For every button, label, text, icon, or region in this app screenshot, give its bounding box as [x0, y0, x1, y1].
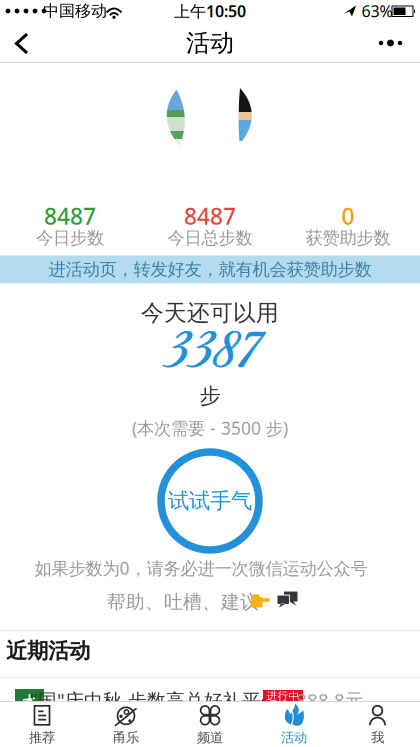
button[interactable]: 我: [337, 702, 417, 747]
staticText: 888.8元: [296, 688, 364, 712]
staticText: 进行中: [266, 689, 299, 702]
staticText: 上午10:50: [174, 0, 246, 22]
staticText: 我: [371, 729, 384, 746]
staticText: 步: [199, 383, 220, 409]
staticText: 试试手气: [168, 488, 252, 514]
staticText: 63%: [361, 0, 392, 22]
staticText: 3387: [166, 315, 259, 392]
staticText: 甬乐: [113, 729, 139, 746]
button[interactable]: 甬乐: [86, 702, 166, 747]
staticText: 0: [341, 201, 354, 231]
staticText: 今日总步数: [167, 227, 252, 249]
staticText: 获赞助步数: [305, 227, 390, 249]
button[interactable]: "国"庆中秋 步数高兑好礼平分: [0, 678, 420, 722]
button[interactable]: 活动: [254, 702, 334, 747]
button[interactable]: [0, 22, 44, 65]
staticText: 活动: [186, 28, 234, 58]
staticText: 进活动页，转发好友，就有机会获赞助步数: [48, 259, 371, 280]
button[interactable]: 试试手气: [157, 448, 263, 554]
staticText: 帮助、吐槽、建议: [107, 590, 259, 613]
staticText: 频道: [197, 729, 223, 746]
staticText: 如果步数为0，请务必进一次微信运动公众号: [34, 556, 367, 579]
button[interactable]: 频道: [170, 702, 250, 747]
staticText: 3387: [165, 315, 258, 391]
button[interactable]: 进活动页，转发好友，就有机会获赞助步数: [0, 255, 420, 283]
staticText: 8487: [184, 201, 236, 231]
staticText: 8487: [44, 201, 96, 231]
staticText: 今天还可以用: [141, 299, 279, 327]
staticText: 中国移动: [43, 1, 107, 21]
staticText: 推荐: [29, 729, 55, 746]
button[interactable]: [369, 22, 412, 64]
staticText: (本次需要 - 3500 步): [132, 416, 288, 439]
staticText: 今日步数: [36, 227, 104, 249]
button[interactable]: 推荐: [2, 702, 82, 747]
staticText: 活动: [281, 729, 307, 746]
staticText: 近期活动: [6, 638, 90, 664]
staticText: "国"庆中秋 步数高兑好礼平分: [30, 688, 280, 712]
